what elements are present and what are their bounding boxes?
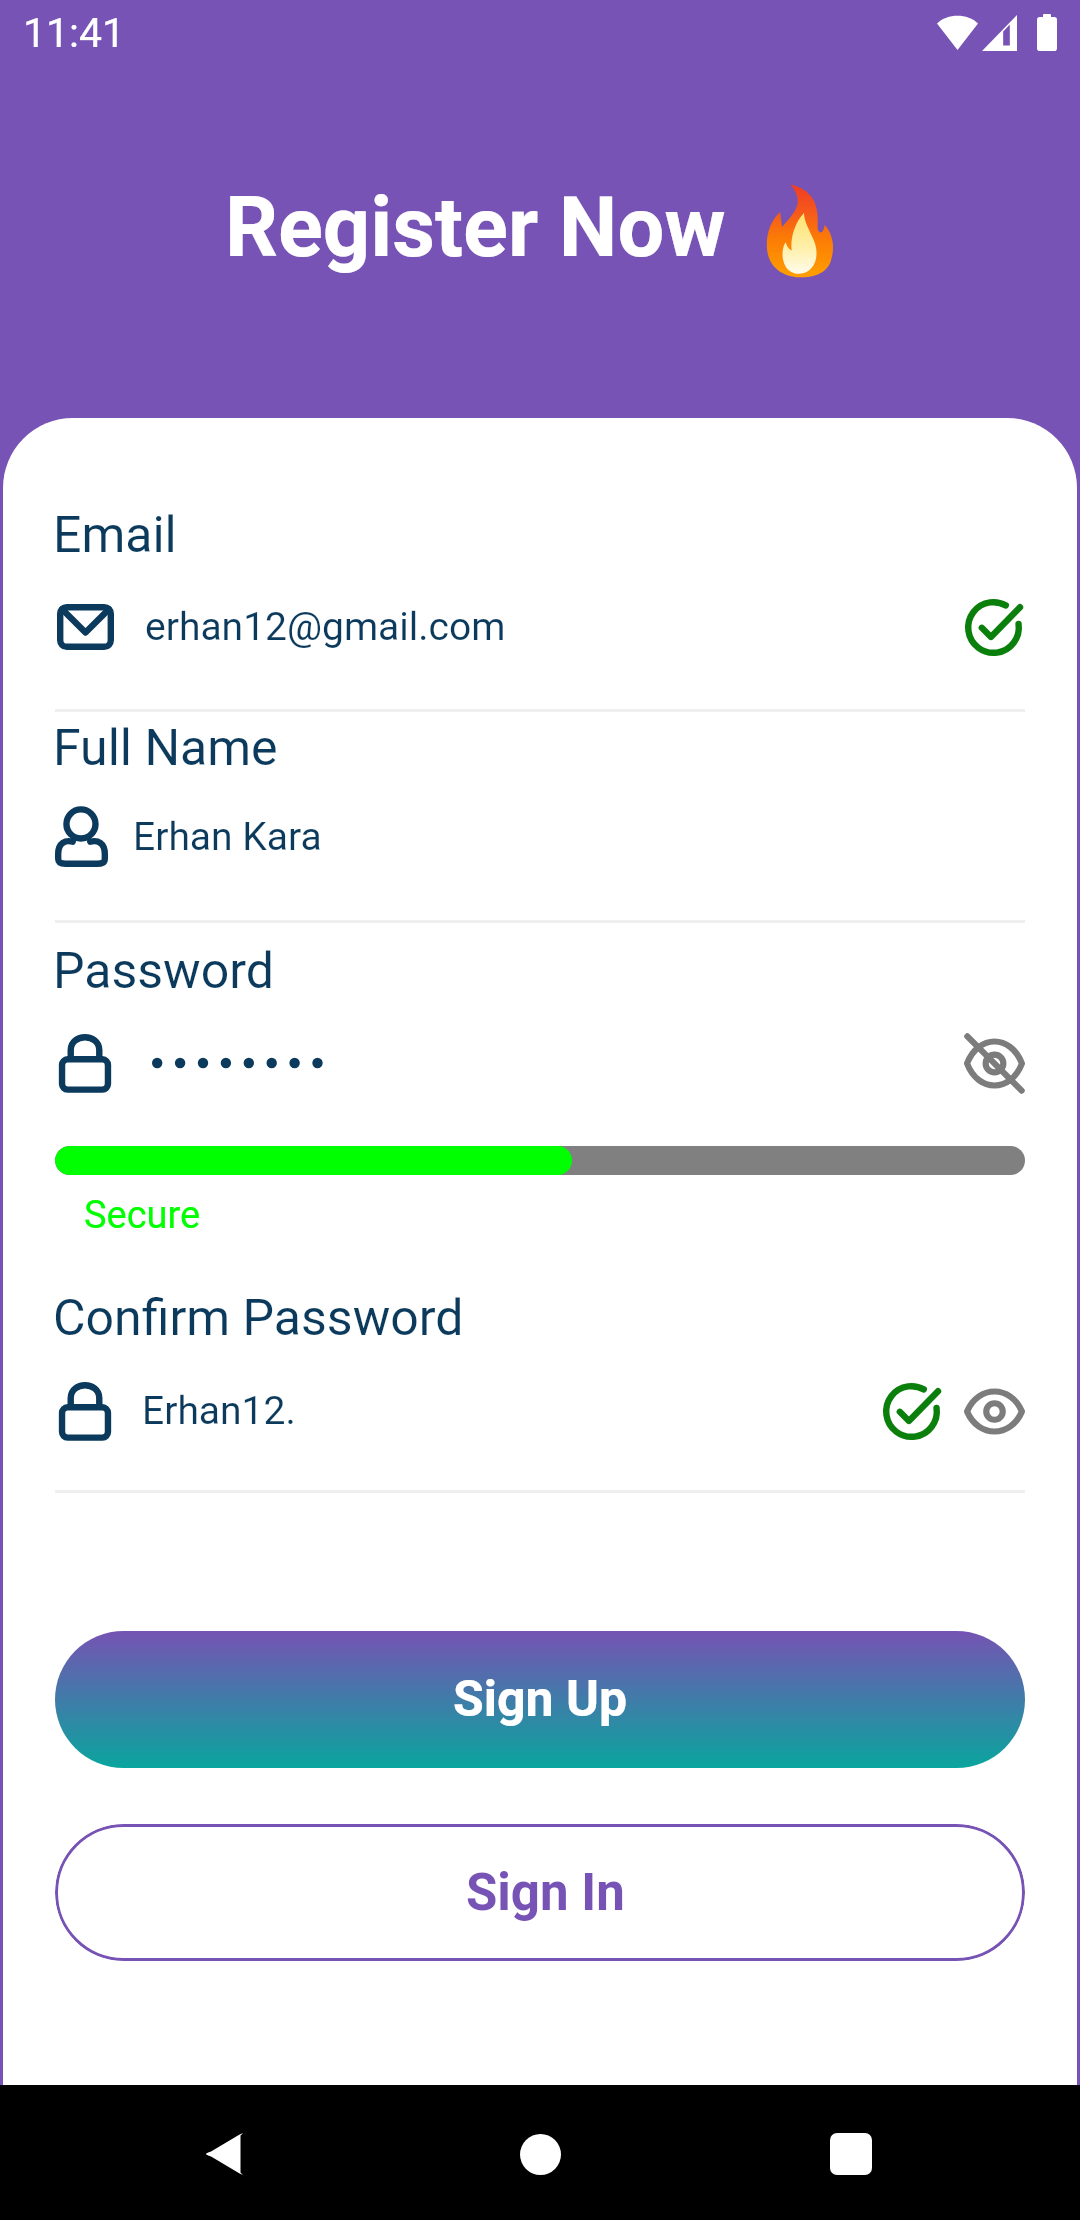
staticText: 11:41: [23, 9, 126, 57]
staticText: Erhan Kara: [133, 814, 322, 860]
staticText: Erhan12.: [142, 1388, 296, 1434]
button[interactable]: erhan12@gmail.com: [57, 596, 1025, 658]
button[interactable]: Show password: [964, 1379, 1025, 1443]
staticText: erhan12@gmail.com: [145, 604, 506, 650]
staticText: Confirm Password: [53, 1289, 464, 1348]
button[interactable]: Back: [171, 2099, 281, 2209]
button[interactable]: Sign Up: [55, 1631, 1025, 1768]
staticText: Secure: [84, 1193, 201, 1238]
staticText: Email: [53, 506, 177, 565]
staticText: Password: [53, 942, 274, 1001]
button[interactable]: Erhan Kara: [57, 806, 1025, 868]
button[interactable]: Hide password: [964, 1030, 1025, 1096]
button[interactable]: Erhan12.: [57, 1379, 1025, 1443]
staticText: Sign Up: [453, 1670, 628, 1729]
staticText: Register Now: [225, 179, 726, 276]
staticText: Full Name: [53, 719, 278, 778]
button[interactable]: Sign In: [55, 1824, 1025, 1961]
button[interactable]: Home: [485, 2099, 595, 2209]
staticText: Sign In: [466, 1863, 625, 1923]
button[interactable]: Recent apps: [796, 2099, 906, 2209]
button[interactable]: Hide password: [57, 1030, 1025, 1096]
